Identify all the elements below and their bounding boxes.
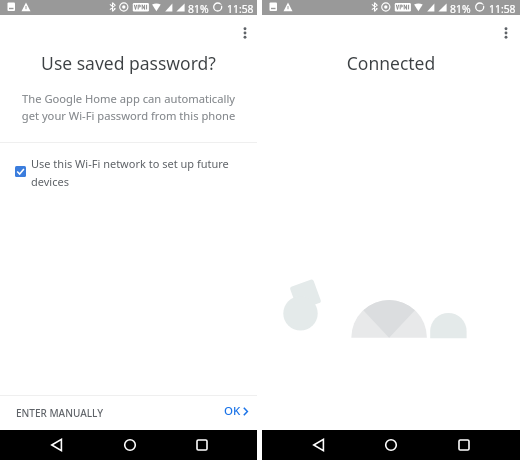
staticText: 81%	[450, 2, 471, 16]
button[interactable]: Back	[45, 433, 69, 457]
button[interactable]: Back	[307, 433, 331, 457]
button[interactable]: Use this Wi-Fi network to set up future …	[0, 152, 257, 193]
staticText: 11:58	[489, 2, 516, 16]
button[interactable]: More options	[493, 20, 519, 46]
staticText: 81%	[188, 2, 209, 16]
button[interactable]: ENTER MANUALLY	[8, 400, 115, 426]
button[interactable]: Recent apps	[190, 433, 214, 457]
staticText: OK	[224, 403, 241, 419]
staticText: Connected	[262, 51, 520, 75]
staticText: Use saved password?	[0, 51, 257, 75]
staticText: Use this Wi-Fi network to set up future …	[31, 156, 229, 189]
button[interactable]: Recent apps	[452, 433, 476, 457]
button[interactable]: Home	[118, 433, 142, 457]
button[interactable]: OK	[214, 397, 256, 425]
button[interactable]: Home	[379, 433, 403, 457]
staticText: 11:58	[227, 2, 254, 16]
button[interactable]: More options	[232, 20, 258, 46]
staticText: ENTER MANUALLY	[16, 406, 103, 420]
staticText: The Google Home app can automatically ge…	[0, 91, 257, 124]
